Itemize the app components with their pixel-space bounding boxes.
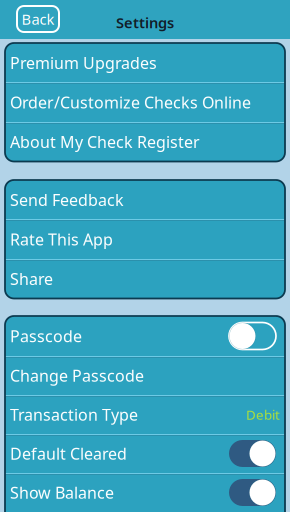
button[interactable]: Back	[17, 6, 59, 32]
staticText: Transaction Type	[10, 404, 138, 425]
button[interactable]: Transaction Type	[5, 395, 285, 434]
staticText: Rate This App	[10, 229, 113, 250]
staticText: Send Feedback	[10, 189, 124, 210]
staticText: Share	[10, 268, 53, 289]
button[interactable]: Send Feedback	[5, 180, 285, 219]
button[interactable]: Share	[5, 259, 285, 298]
button[interactable]: About My Check Register	[5, 122, 285, 161]
staticText: Settings	[116, 13, 174, 32]
button[interactable]: Order/Customize Checks Online	[5, 82, 285, 122]
staticText: Change Passcode	[10, 365, 144, 386]
staticText: About My Check Register	[10, 131, 200, 152]
staticText: Default Cleared	[10, 443, 127, 464]
button[interactable]: Change Passcode	[5, 356, 285, 395]
button[interactable]: Rate This App	[5, 219, 285, 259]
button[interactable]: Default Cleared	[5, 434, 285, 473]
staticText: Debit	[246, 406, 280, 423]
staticText: Back	[21, 9, 54, 29]
button[interactable]: Show Balance	[5, 473, 285, 512]
staticText: Order/Customize Checks Online	[10, 92, 251, 113]
button[interactable]: Passcode	[5, 316, 285, 356]
staticText: Passcode	[10, 325, 82, 347]
button[interactable]: Premium Upgrades	[5, 43, 285, 82]
staticText: Premium Upgrades	[10, 52, 157, 73]
staticText: Show Balance	[10, 482, 114, 503]
